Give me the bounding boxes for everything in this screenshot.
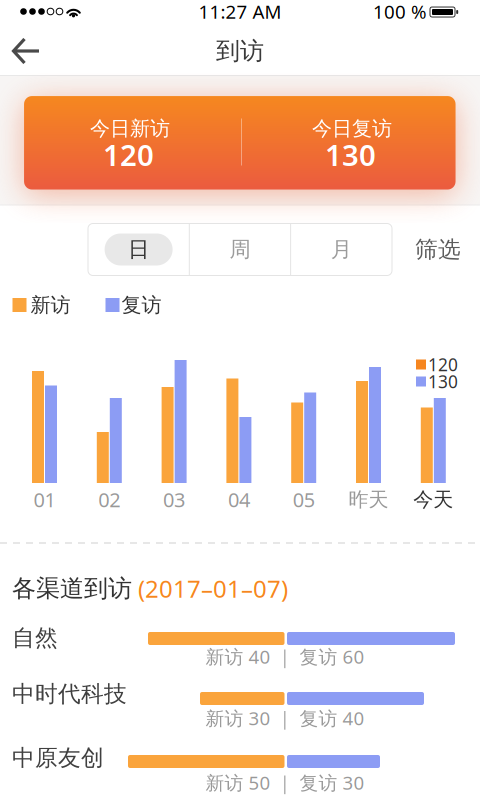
staticText: 130 [325, 135, 376, 174]
button[interactable]: 日 [89, 224, 189, 274]
staticText: 新访 [30, 293, 70, 317]
staticText: 04 [228, 486, 250, 513]
staticText: 新访 50 ｜ 复访 30 [205, 770, 364, 795]
staticText: 复访 [121, 293, 161, 317]
staticText: 01 [33, 486, 55, 513]
staticText: 筛选 [415, 236, 461, 263]
staticText: 120 [103, 135, 154, 174]
button[interactable]: 周 [190, 224, 290, 274]
staticText: 中原友创 [12, 744, 104, 772]
staticText: 到访 [216, 36, 264, 66]
staticText: 周 [229, 236, 250, 263]
button[interactable]: Back [5, 29, 49, 73]
staticText: 新访 40 ｜ 复访 60 [205, 644, 364, 669]
staticText: 120 [428, 353, 458, 376]
staticText: 今天 [413, 487, 453, 512]
staticText: (2017–01–07) [132, 573, 288, 604]
staticText: 日 [128, 236, 149, 263]
staticText: 100 % [373, 0, 427, 24]
staticText: 03 [163, 486, 185, 513]
staticText: 11:27 AM [198, 0, 281, 24]
staticText: 今日新访 [90, 116, 170, 141]
staticText: 月 [331, 236, 352, 263]
button[interactable]: 月 [291, 224, 391, 274]
staticText: 今日复访 [312, 116, 392, 141]
staticText: 各渠道到访 [12, 574, 132, 603]
staticText: 自然 [12, 624, 58, 652]
staticText: 130 [428, 370, 458, 393]
staticText: 05 [293, 486, 315, 513]
button[interactable]: 筛选 [403, 224, 473, 274]
staticText: 中时代科技 [12, 680, 127, 708]
staticText: 02 [98, 486, 120, 513]
staticText: 新访 30 ｜ 复访 40 [205, 706, 364, 730]
staticText: 昨天 [348, 487, 388, 512]
